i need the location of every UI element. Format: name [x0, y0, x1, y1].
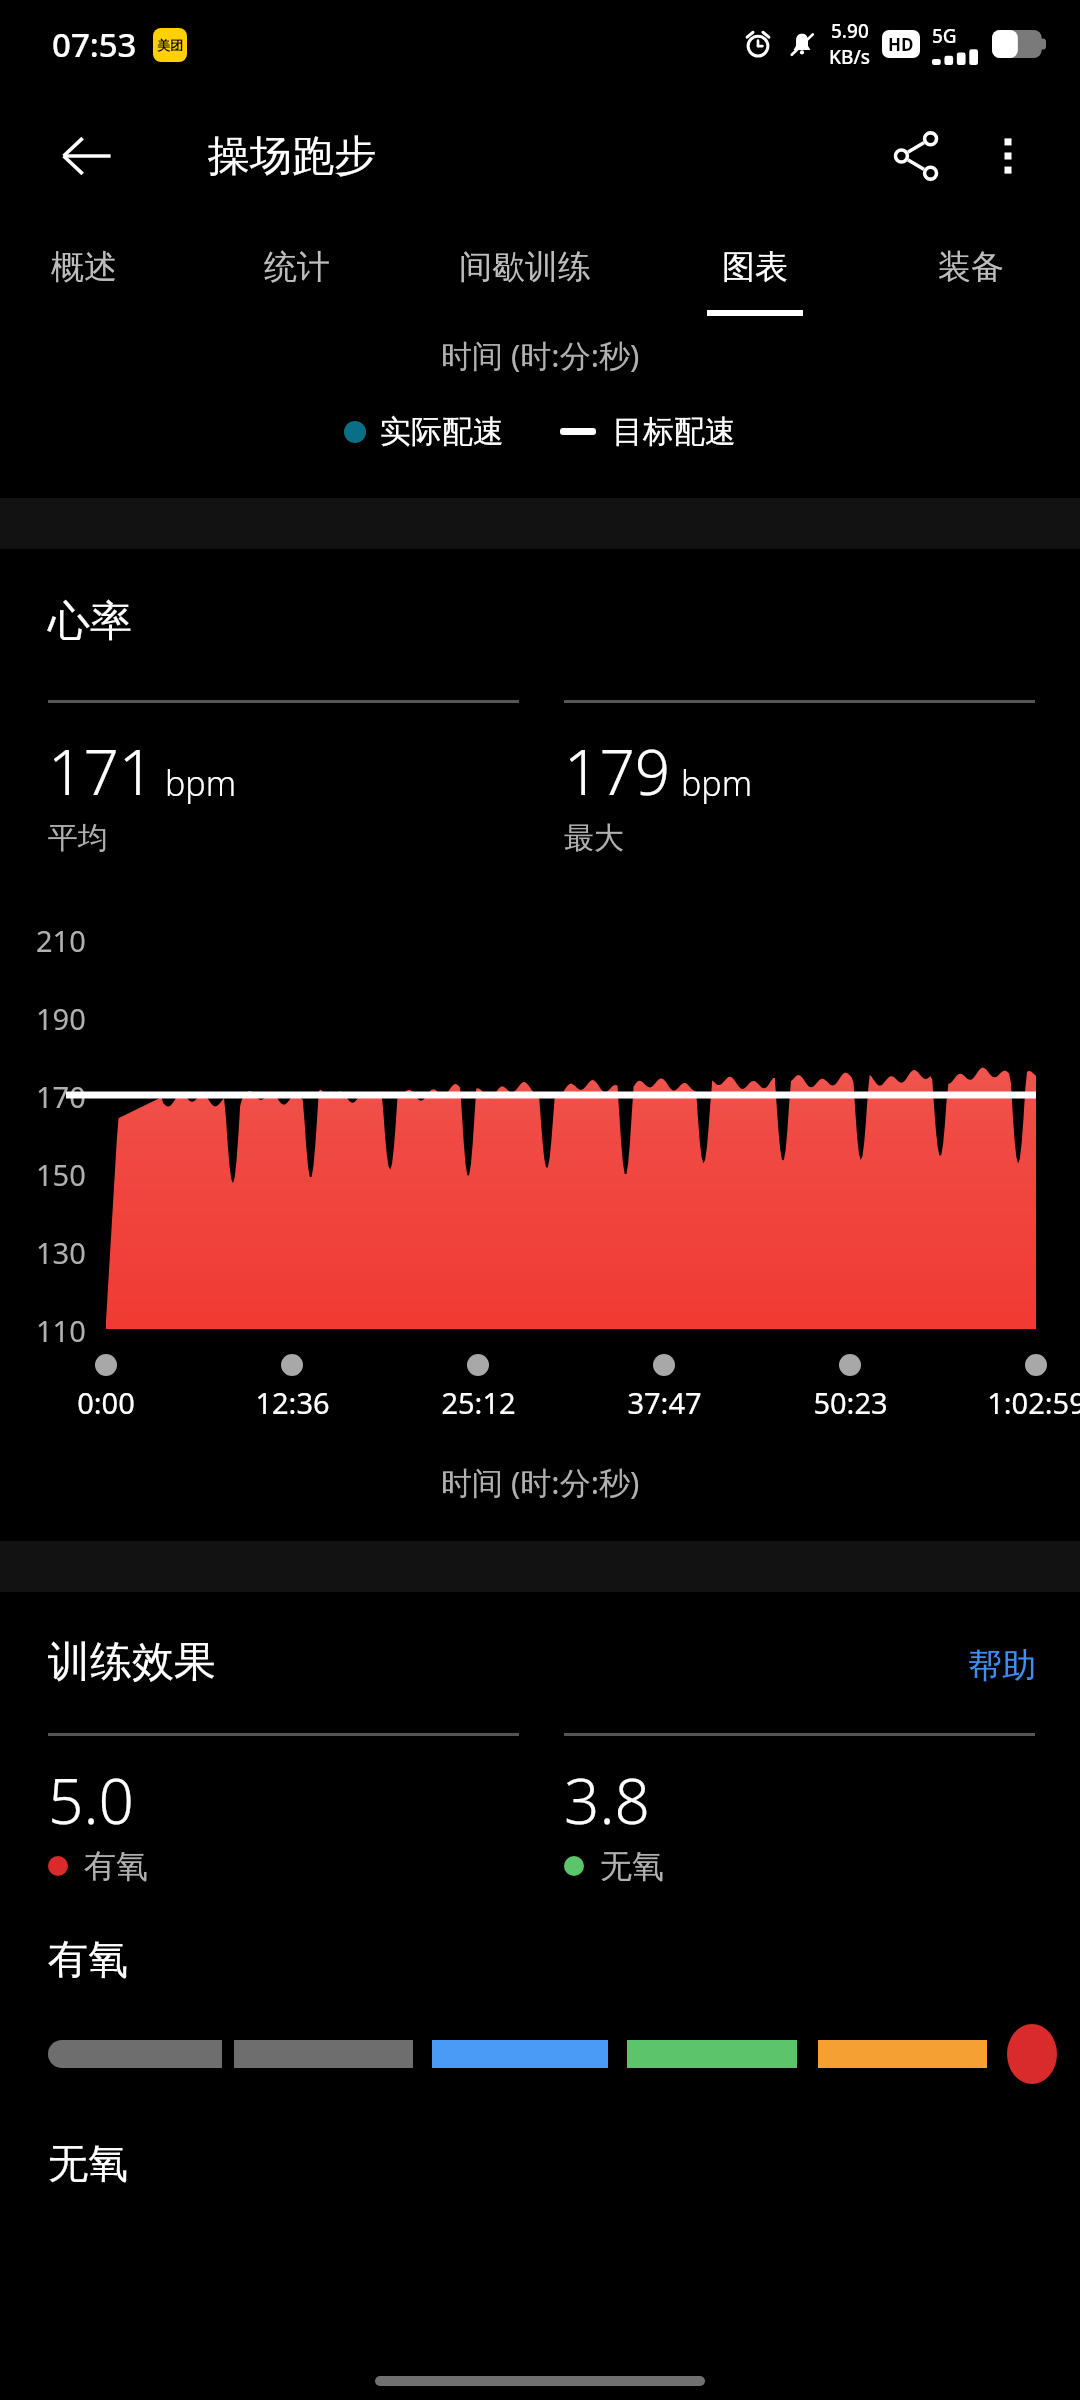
button[interactable]: 帮助 — [954, 1636, 1050, 1695]
staticText: 统计 — [264, 246, 330, 288]
staticText: 37:47 — [627, 1383, 702, 1422]
staticText: 12:36 — [255, 1383, 330, 1422]
staticText: 有氧 — [84, 1846, 148, 1886]
staticText: 帮助 — [968, 1644, 1036, 1687]
staticText: 3.8 — [564, 1758, 650, 1842]
staticText: KB/s — [829, 44, 870, 70]
button[interactable]: 统计 — [202, 224, 392, 310]
staticText: 时间 (时:分:秒) — [441, 334, 640, 376]
button[interactable]: Back — [40, 110, 132, 202]
staticText: 美团 — [157, 37, 183, 53]
staticText: HD — [888, 33, 914, 56]
staticText: 无氧 — [48, 2138, 128, 2188]
staticText: bpm — [681, 760, 753, 806]
staticText: 50:23 — [813, 1383, 888, 1422]
staticText: 25:12 — [441, 1383, 516, 1422]
button[interactable]: 图表 — [660, 224, 850, 310]
staticText: 无氧 — [600, 1846, 664, 1886]
staticText: 图表 — [722, 246, 788, 288]
button[interactable]: 间歇训练 — [430, 224, 620, 310]
button[interactable]: 装备 — [876, 224, 1066, 310]
button[interactable]: More options — [962, 110, 1054, 202]
staticText: 210 — [36, 921, 86, 960]
staticText: 最大 — [564, 819, 624, 857]
button[interactable]: Share — [870, 110, 962, 202]
staticText: 171 — [48, 729, 155, 813]
staticText: 170 — [36, 1077, 86, 1116]
staticText: 190 — [36, 999, 86, 1038]
staticText: 5.0 — [48, 1758, 134, 1842]
staticText: 179 — [564, 729, 671, 813]
staticText: 间歇训练 — [459, 246, 591, 288]
staticText: 0:00 — [77, 1383, 135, 1422]
staticText: 平均 — [48, 819, 108, 857]
staticText: 操场跑步 — [208, 130, 376, 183]
staticText: 心率 — [48, 595, 132, 648]
staticText: 概述 — [51, 246, 117, 288]
button[interactable]: 概述 — [0, 224, 179, 310]
staticText: 实际配速 — [380, 412, 504, 451]
staticText: 装备 — [938, 246, 1004, 288]
staticText: 150 — [36, 1155, 86, 1194]
staticText: 07:53 — [52, 22, 137, 67]
staticText: 有氧 — [48, 1934, 128, 1984]
staticText: 1:02:59 — [987, 1383, 1080, 1422]
staticText: 训练效果 — [48, 1636, 216, 1689]
staticText: 5.90 — [831, 18, 869, 44]
staticText: 时间 (时:分:秒) — [441, 1461, 640, 1503]
staticText: 130 — [36, 1233, 86, 1272]
staticText: 110 — [36, 1311, 86, 1350]
staticText: 目标配速 — [612, 412, 736, 451]
staticText: bpm — [165, 760, 237, 806]
staticText: 5G — [932, 23, 957, 49]
